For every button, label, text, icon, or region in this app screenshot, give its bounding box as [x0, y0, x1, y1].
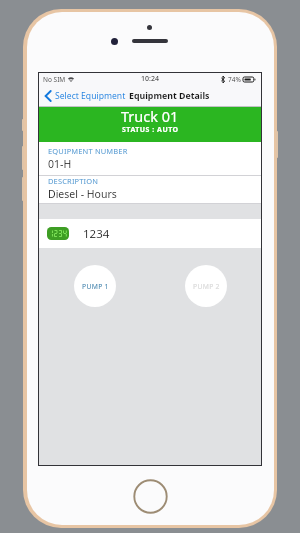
staticText: STATUS : AUTO: [122, 125, 179, 135]
other: Meter reading: [47, 227, 69, 240]
button[interactable]: DESCRIPTION: [39, 176, 261, 204]
staticText: 1234: [83, 226, 110, 242]
button[interactable]: EQUIPMENT NUMBER: [39, 142, 261, 176]
other: Home: [133, 479, 168, 514]
staticText: Select Equipment: [55, 90, 126, 102]
button[interactable]: PUMP 2: [185, 265, 227, 307]
staticText: EQUIPMENT NUMBER: [48, 146, 128, 156]
staticText: 74%: [228, 75, 241, 84]
button[interactable]: Meter reading: [39, 219, 261, 248]
staticText: 01-H: [48, 157, 72, 171]
button[interactable]: PUMP 1: [74, 265, 116, 307]
staticText: No SIM: [43, 75, 66, 84]
staticText: Diesel - Hours: [48, 187, 117, 201]
staticText: DESCRIPTION: [48, 176, 99, 186]
staticText: PUMP 1: [82, 282, 109, 291]
staticText: PUMP 2: [193, 282, 220, 291]
button[interactable]: Select Equipment: [39, 90, 126, 102]
staticText: 10:24: [141, 74, 159, 84]
staticText: Equipment Details: [129, 90, 210, 102]
staticText: Truck 01: [121, 106, 179, 126]
